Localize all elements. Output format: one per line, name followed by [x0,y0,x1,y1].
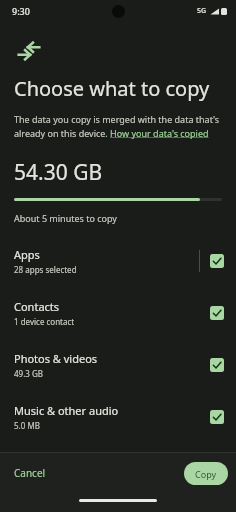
button[interactable]: Apps checkbox, checked [210,254,224,268]
staticText: Contacts [14,299,60,314]
button[interactable]: The data you copy is merged with the dat… [14,113,223,139]
staticText: 5G [197,6,207,16]
staticText: Apps [14,247,40,262]
staticText: Music & other audio [14,403,119,418]
staticText: 5.0 MB [14,420,40,431]
staticText: Choose what to copy [14,75,210,102]
staticText: 9:30 [12,5,30,17]
button[interactable]: Cancel [5,460,55,486]
button[interactable]: Contacts checkbox, checked [210,306,224,320]
button[interactable]: Contacts [0,297,236,329]
button[interactable]: Apps [0,245,236,277]
button[interactable]: Transfer data [9,31,49,71]
staticText: 1 device contact [14,316,75,327]
button[interactable]: Music & other audio [0,401,236,433]
staticText: Cancel [14,466,46,480]
staticText: 28 apps selected [14,264,77,275]
button[interactable]: Photos & videos checkbox, checked [210,358,224,372]
staticText: 49.3 GB [14,368,43,379]
button[interactable]: Music & other audio checkbox, checked [210,410,224,424]
staticText: Photos & videos [14,351,98,366]
button[interactable]: Photos & videos [0,349,236,381]
button[interactable]: Copy [184,462,228,485]
staticText: Copy [195,468,217,480]
staticText: 54.30 GB [14,158,103,187]
staticText: About 5 minutes to copy [14,212,117,224]
